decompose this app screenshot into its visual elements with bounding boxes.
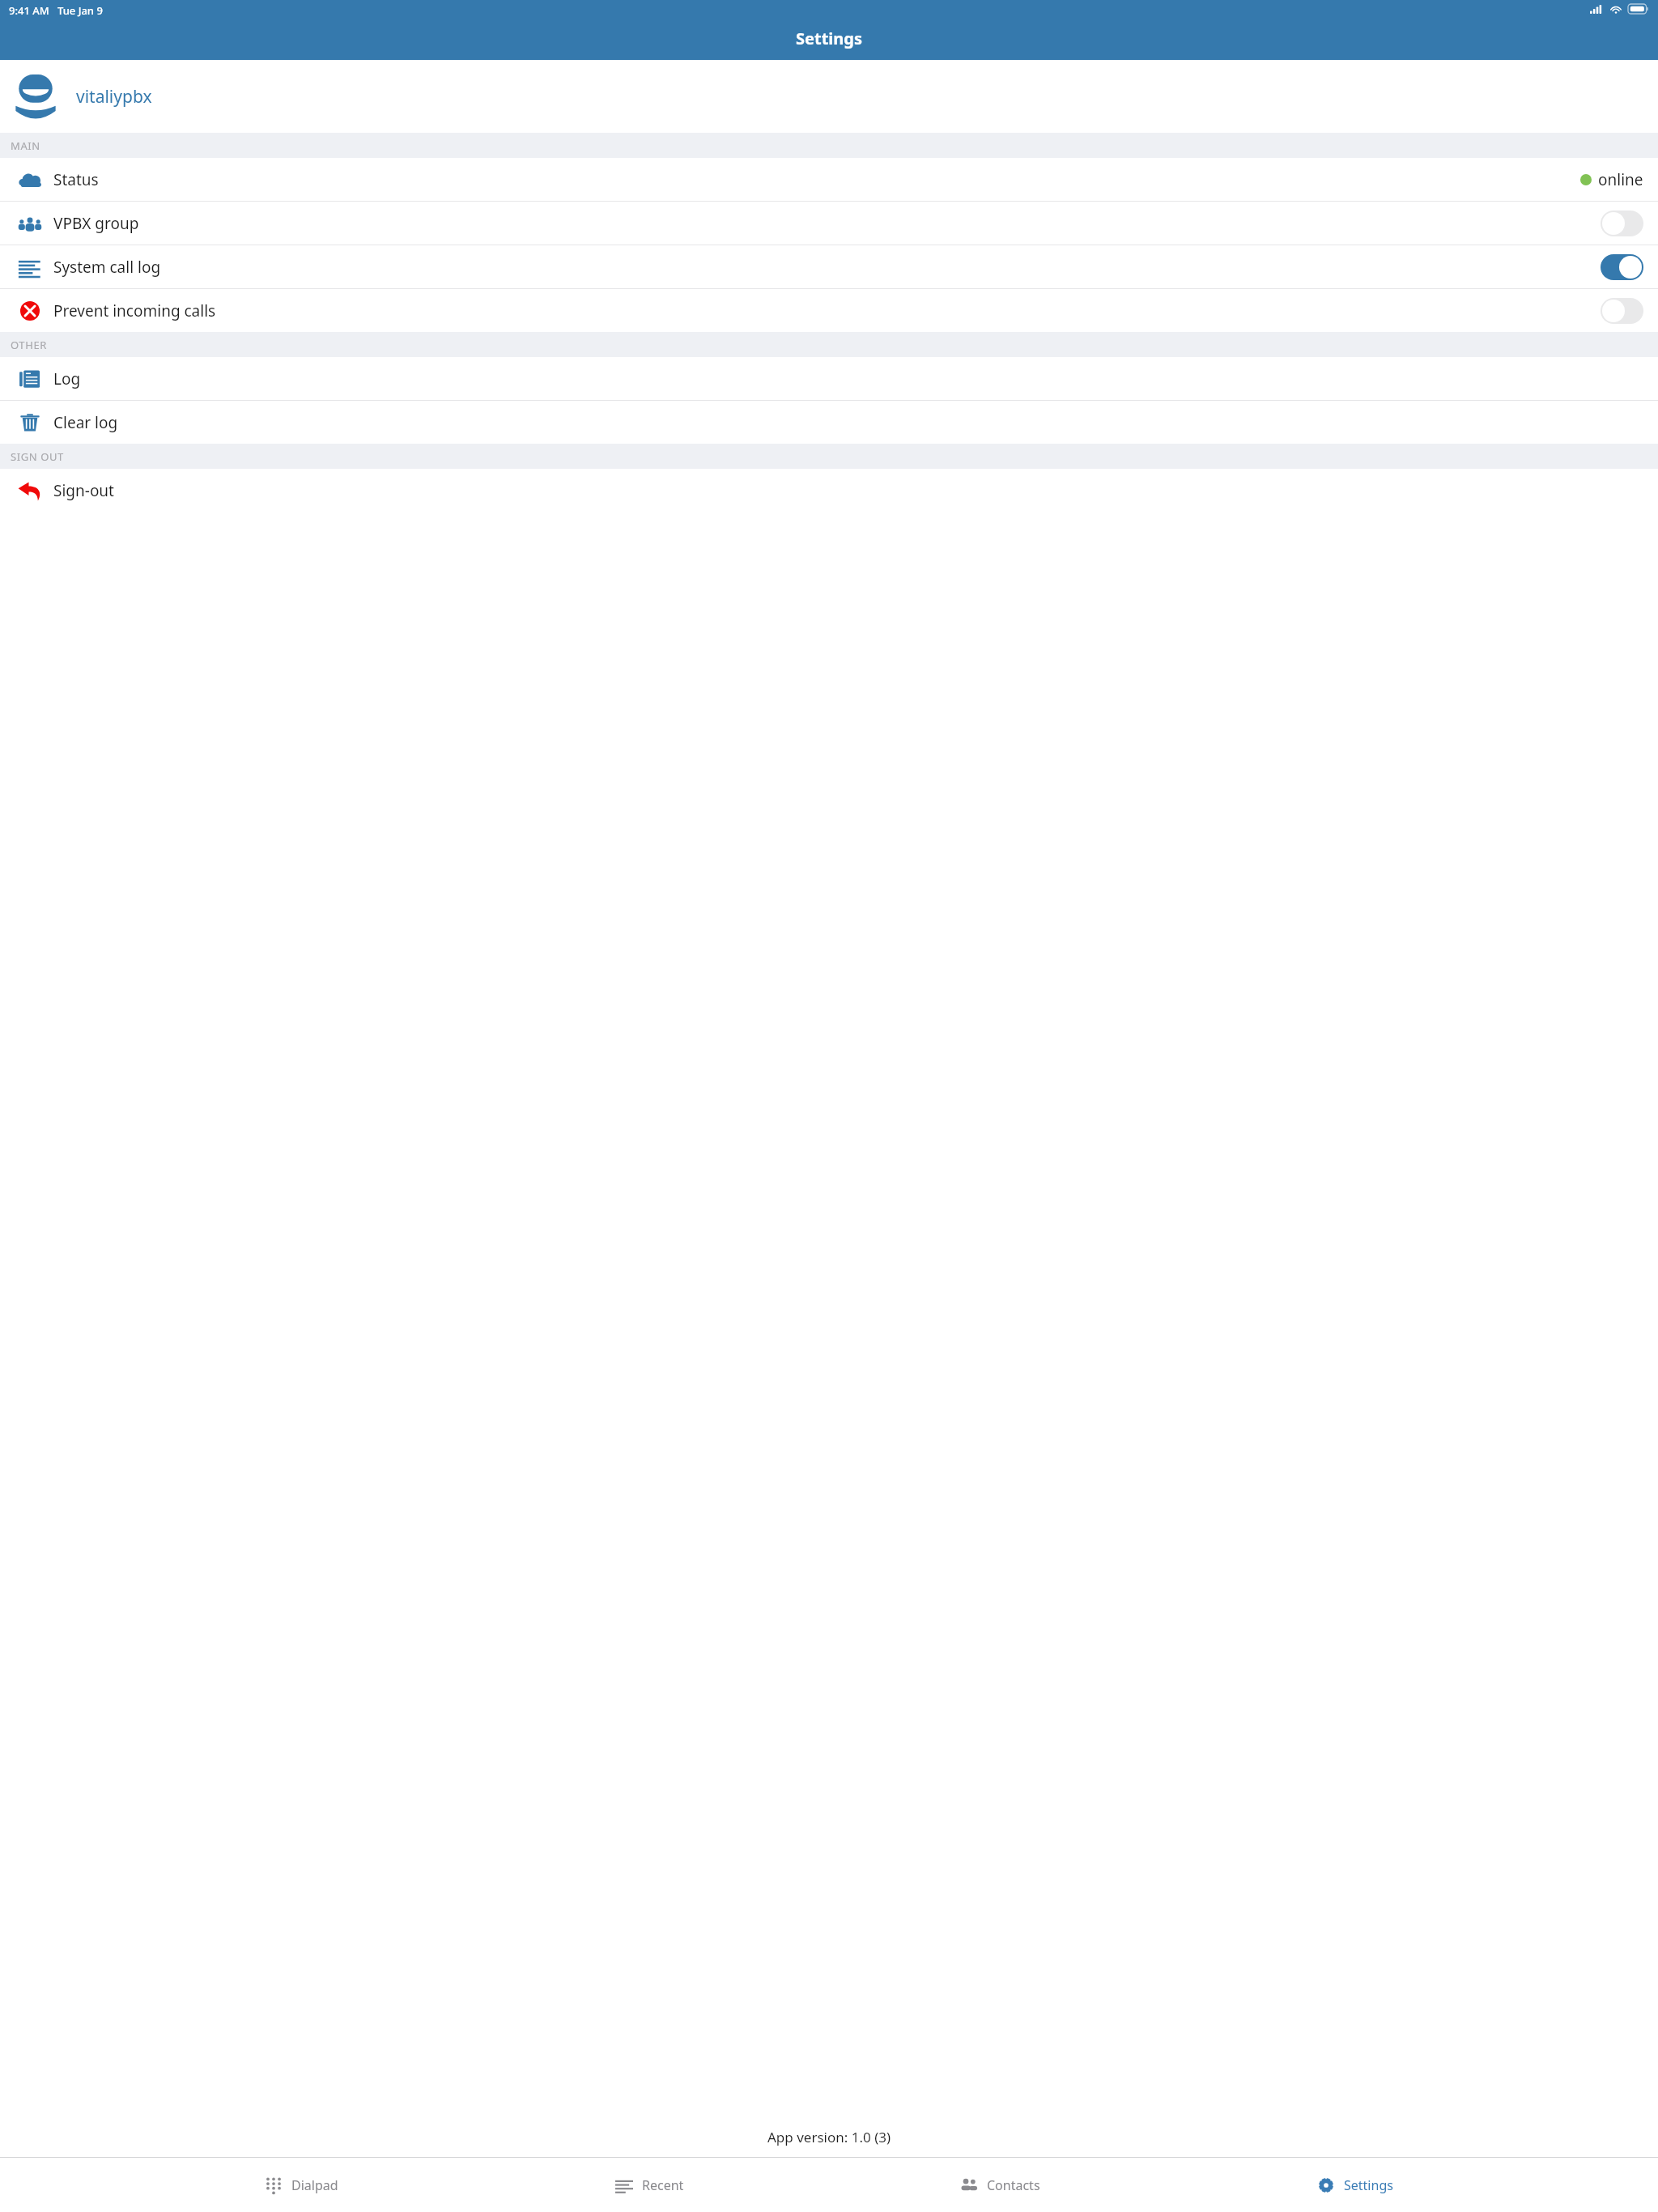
button[interactable]: Disabled	[1601, 298, 1643, 324]
staticText: Settings	[796, 28, 862, 49]
staticText: SIGN OUT	[11, 449, 64, 464]
staticText: Status	[53, 169, 99, 190]
staticText: Tue Jan 9	[57, 3, 103, 18]
button[interactable]: vitaliypbx	[0, 60, 1658, 133]
staticText: 9:41 AM	[9, 3, 49, 18]
button[interactable]: Prevent incoming calls	[0, 289, 1658, 332]
button[interactable]: Enabled	[1601, 254, 1643, 280]
button[interactable]: VPBX group	[0, 202, 1658, 245]
button[interactable]: Sign-out	[0, 469, 1658, 512]
button[interactable]: Recent	[604, 2170, 695, 2201]
button[interactable]: Disabled	[1601, 211, 1643, 236]
staticText: online	[1598, 169, 1643, 190]
staticText: Dialpad	[291, 2176, 338, 2194]
staticText: vitaliypbx	[76, 85, 152, 108]
staticText: Prevent incoming calls	[53, 300, 216, 321]
staticText: Clear log	[53, 412, 118, 433]
button[interactable]: Settings	[1306, 2170, 1405, 2201]
staticText: System call log	[53, 257, 161, 278]
staticText: MAIN	[11, 138, 40, 153]
staticText: App version: 1.0 (3)	[767, 2128, 891, 2146]
staticText: VPBX group	[53, 213, 139, 234]
staticText: Settings	[1344, 2176, 1393, 2194]
button[interactable]: System call log	[0, 245, 1658, 288]
staticText: Recent	[642, 2176, 684, 2194]
button[interactable]: Clear log	[0, 401, 1658, 444]
button[interactable]: Status	[0, 158, 1658, 201]
staticText: OTHER	[11, 338, 47, 352]
button[interactable]: Dialpad	[253, 2170, 350, 2201]
staticText: Sign-out	[53, 480, 114, 501]
button[interactable]: Log	[0, 357, 1658, 400]
staticText: Contacts	[987, 2176, 1040, 2194]
button[interactable]: Contacts	[949, 2170, 1052, 2201]
staticText: Log	[53, 368, 81, 389]
